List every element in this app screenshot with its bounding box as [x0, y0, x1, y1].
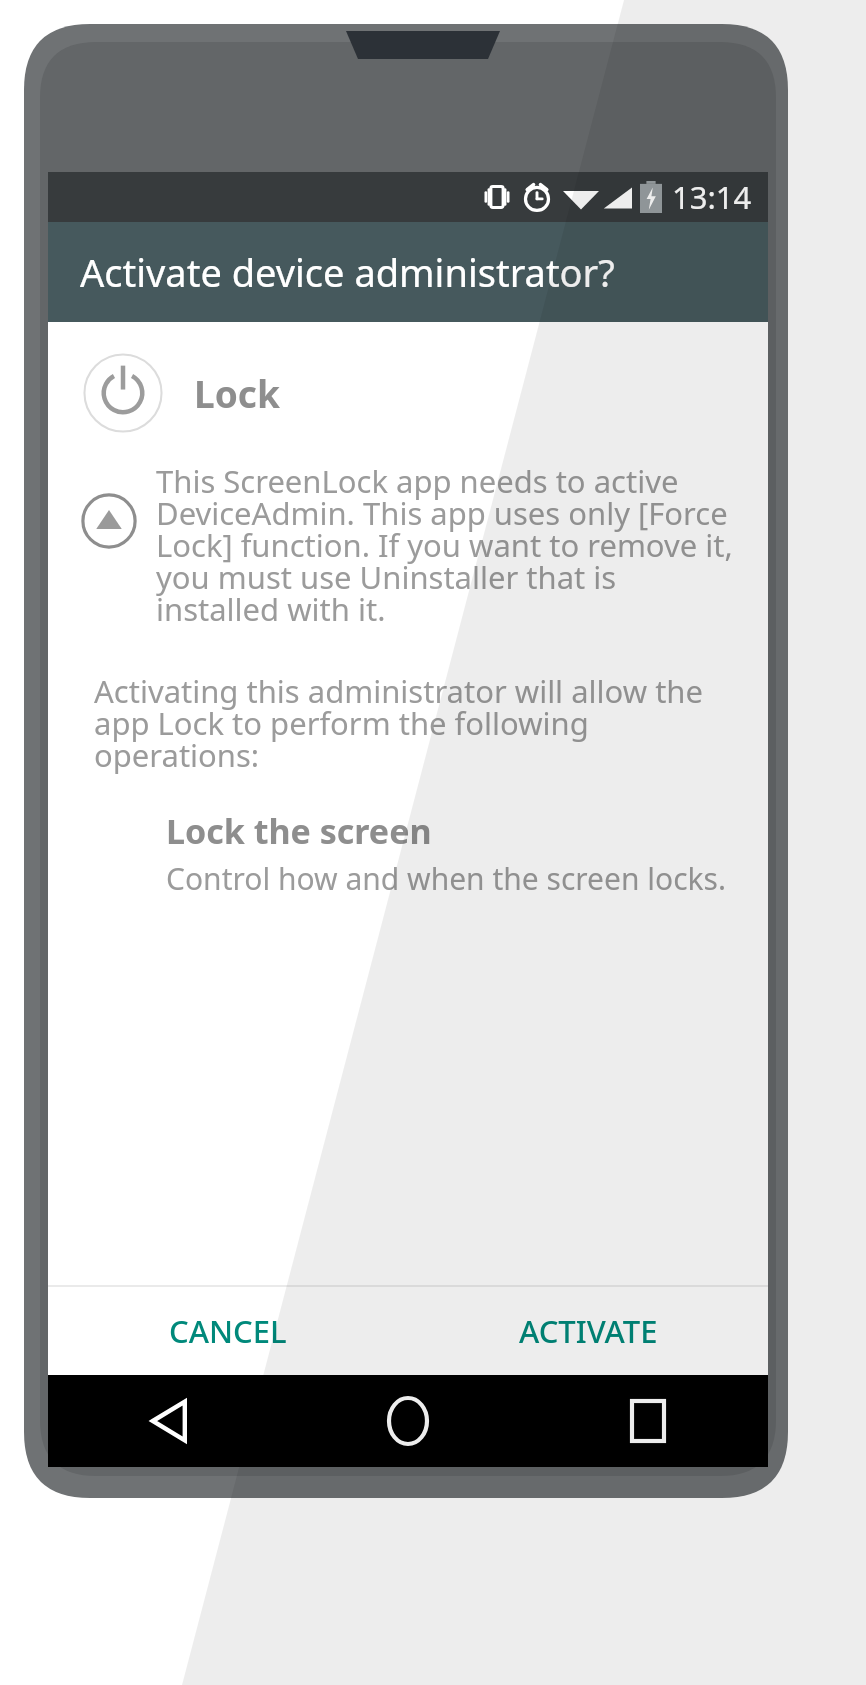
button[interactable]: Collapse description [80, 492, 138, 550]
button[interactable]: ACTIVATE [485, 1290, 692, 1372]
staticText: Activating this administrator will allow… [94, 670, 740, 776]
staticText: ACTIVATE [519, 1310, 658, 1352]
staticText: This ScreenLock app needs to active Devi… [156, 460, 744, 630]
staticText: Lock the screen [166, 808, 432, 854]
button[interactable]: CANCEL [135, 1290, 321, 1372]
staticText: Control how and when the screen locks. [166, 858, 726, 899]
button[interactable]: Recents [528, 1375, 768, 1467]
staticText: CANCEL [169, 1310, 287, 1352]
button[interactable]: Back [48, 1375, 288, 1467]
staticText: Activate device administrator? [80, 246, 615, 298]
staticText: Lock [194, 368, 280, 418]
button[interactable]: Home [288, 1375, 528, 1467]
staticText: 13:14 [672, 176, 752, 218]
